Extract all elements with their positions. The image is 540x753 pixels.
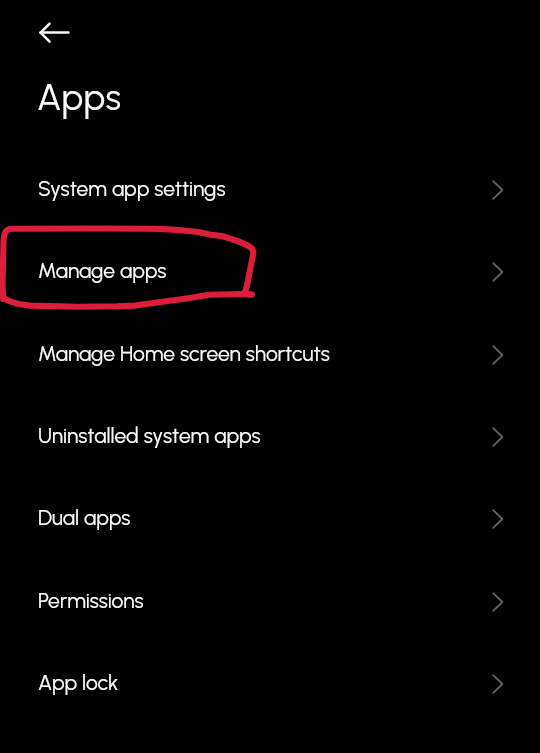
staticText: Apps xyxy=(37,76,122,119)
button[interactable]: App lock xyxy=(0,641,540,723)
staticText: Manage apps xyxy=(38,258,167,283)
staticText: App lock xyxy=(38,670,119,695)
button[interactable]: Navigate up xyxy=(26,9,74,57)
staticText: Uninstalled system apps xyxy=(38,423,261,448)
button[interactable]: Manage Home screen shortcuts xyxy=(0,312,540,394)
staticText: Permissions xyxy=(38,588,144,613)
button[interactable]: Permissions xyxy=(0,559,540,641)
button[interactable]: Uninstalled system apps xyxy=(0,394,540,476)
button[interactable]: Manage apps xyxy=(0,229,540,311)
button[interactable]: Dual apps xyxy=(0,476,540,558)
staticText: Manage Home screen shortcuts xyxy=(38,341,330,366)
button[interactable]: System app settings xyxy=(0,147,540,229)
staticText: Dual apps xyxy=(38,505,131,530)
staticText: System app settings xyxy=(38,176,226,201)
